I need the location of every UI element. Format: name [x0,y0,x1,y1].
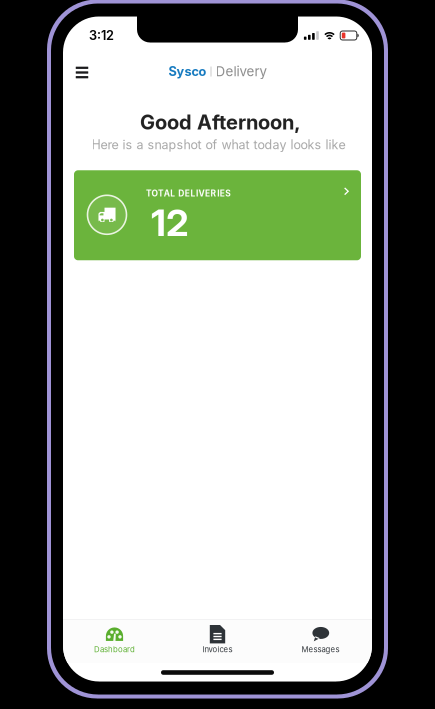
button[interactable]: Dashboard [63,625,166,654]
staticText: 3:12 [89,28,114,43]
button[interactable]: Messages [269,625,372,654]
staticText: TOTAL DELIVERIES [146,188,231,198]
staticText: 12 [151,200,189,245]
staticText: Messages [301,645,339,654]
staticText: Here is a snapshot of what today looks l… [91,137,345,152]
staticText: Good Afternoon, [140,110,301,134]
staticText: Invoices [202,645,232,654]
button[interactable]: TOTAL DELIVERIES [74,170,361,260]
staticText: Delivery [215,63,266,79]
button[interactable]: Invoices [166,625,269,654]
staticText: Sysco [168,64,206,79]
staticText: Dashboard [94,645,135,654]
button[interactable]: Menu [69,58,95,84]
